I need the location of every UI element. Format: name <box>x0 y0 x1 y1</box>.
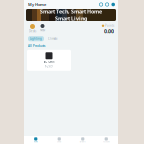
button[interactable]: Search <box>99 3 103 6</box>
staticText: $249 <box>45 65 53 68</box>
staticText: 0.00 <box>104 27 114 35</box>
staticText: Smart Living <box>55 15 87 22</box>
staticText: Climate <box>48 37 58 40</box>
button[interactable]: Climate <box>46 36 60 41</box>
button[interactable]: Shop <box>47 137 71 143</box>
button[interactable]: Account <box>94 137 118 143</box>
staticText: New <box>40 28 45 32</box>
staticText: All Products <box>28 44 45 48</box>
staticText: Smart Tech, Smart Home <box>40 8 102 15</box>
button[interactable]: Deals <box>29 24 36 33</box>
staticText: Orders <box>80 141 86 143</box>
button[interactable]: AC Unit <box>27 50 71 71</box>
staticText: Deals <box>29 29 36 33</box>
staticText: Points <box>105 24 114 27</box>
staticText: Shop <box>57 141 61 143</box>
staticText: My Home <box>28 2 46 7</box>
button[interactable]: New <box>40 24 45 32</box>
staticText: Home <box>34 141 38 143</box>
staticText: Account <box>103 141 109 143</box>
button[interactable]: Home <box>24 137 47 143</box>
button[interactable]: Notifications <box>105 3 109 6</box>
button[interactable]: Orders <box>71 137 94 143</box>
button[interactable]: Lighting <box>28 36 44 41</box>
button[interactable]: Smart Tech, Smart Home <box>24 9 118 21</box>
button[interactable]: Cart <box>111 3 115 6</box>
staticText: Lighting <box>30 37 42 40</box>
staticText: AC Unit <box>43 60 54 64</box>
